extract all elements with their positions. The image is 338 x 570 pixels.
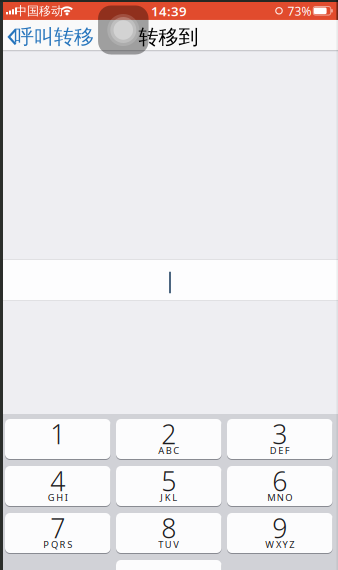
staticText: 1	[50, 416, 65, 452]
staticText: ABC	[158, 444, 179, 457]
button[interactable]: 呼叫转移	[0, 20, 96, 50]
staticText: TUV	[158, 538, 179, 551]
staticText: 4	[50, 463, 65, 499]
button[interactable]: 9	[227, 513, 332, 554]
button[interactable]: 2	[116, 419, 221, 460]
button[interactable]: 4	[5, 466, 110, 507]
staticText: 6	[272, 463, 287, 499]
staticText: 呼叫转移	[14, 25, 94, 49]
button[interactable]: 7	[5, 513, 110, 554]
staticText: 转移到	[139, 25, 199, 49]
staticText: 中国移动	[15, 4, 63, 18]
staticText: PQRS	[43, 538, 72, 551]
staticText: GHI	[48, 491, 68, 504]
staticText: WXYZ	[265, 538, 294, 551]
staticText: 14:39	[151, 2, 187, 20]
button[interactable]: 电话号码输入框	[0, 259, 338, 301]
staticText: 8	[161, 510, 176, 546]
staticText: 5	[161, 463, 176, 499]
button[interactable]: 5	[116, 466, 221, 507]
button[interactable]: 0	[116, 560, 221, 570]
staticText: JKL	[160, 491, 177, 504]
staticText: 9	[272, 510, 287, 546]
button[interactable]: 6	[227, 466, 332, 507]
button[interactable]: 1	[5, 419, 110, 460]
staticText: 3	[272, 416, 287, 452]
staticText: 73%	[287, 3, 311, 19]
staticText: MNO	[267, 491, 292, 504]
button[interactable]: 8	[116, 513, 221, 554]
button[interactable]: 3	[227, 419, 332, 460]
staticText: 2	[161, 416, 176, 452]
button[interactable]: AssistiveTouch	[98, 5, 148, 54]
staticText: DEF	[270, 444, 290, 457]
staticText: 7	[50, 510, 65, 546]
